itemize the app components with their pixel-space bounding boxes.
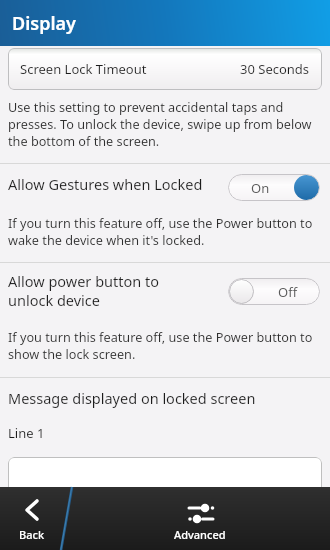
- staticText: Off: [278, 283, 298, 301]
- staticText: If you turn this feature off, use the Po…: [8, 328, 313, 345]
- staticText: Use this setting to prevent accidental t…: [8, 98, 284, 115]
- staticText: Back: [19, 527, 45, 542]
- staticText: presses. To unlock the device, swipe up …: [8, 115, 312, 132]
- staticText: wake the device when it's locked.: [8, 231, 205, 248]
- staticText: Allow Gestures when Locked: [8, 174, 203, 194]
- staticText: Allow power button to unlock device: [8, 271, 159, 310]
- staticText: If you turn this feature off, use the Po…: [8, 214, 313, 231]
- staticText: 30 Seconds: [240, 60, 310, 78]
- button[interactable]: Advanced: [160, 487, 240, 550]
- staticText: On: [251, 179, 270, 197]
- staticText: Display: [12, 11, 76, 36]
- staticText: Screen Lock Timeout: [20, 60, 147, 78]
- button[interactable]: Screen Lock Timeout: [8, 48, 322, 90]
- staticText: Message displayed on locked screen: [8, 388, 256, 408]
- button[interactable]: Off: [228, 278, 320, 305]
- button[interactable]: Back: [0, 487, 58, 550]
- staticText: Line 1: [8, 424, 45, 442]
- staticText: the bottom of the screen.: [8, 132, 160, 149]
- button[interactable]: On: [228, 174, 320, 201]
- staticText: show the lock screen.: [8, 345, 136, 362]
- button[interactable]: [8, 457, 322, 498]
- staticText: Advanced: [174, 527, 226, 542]
